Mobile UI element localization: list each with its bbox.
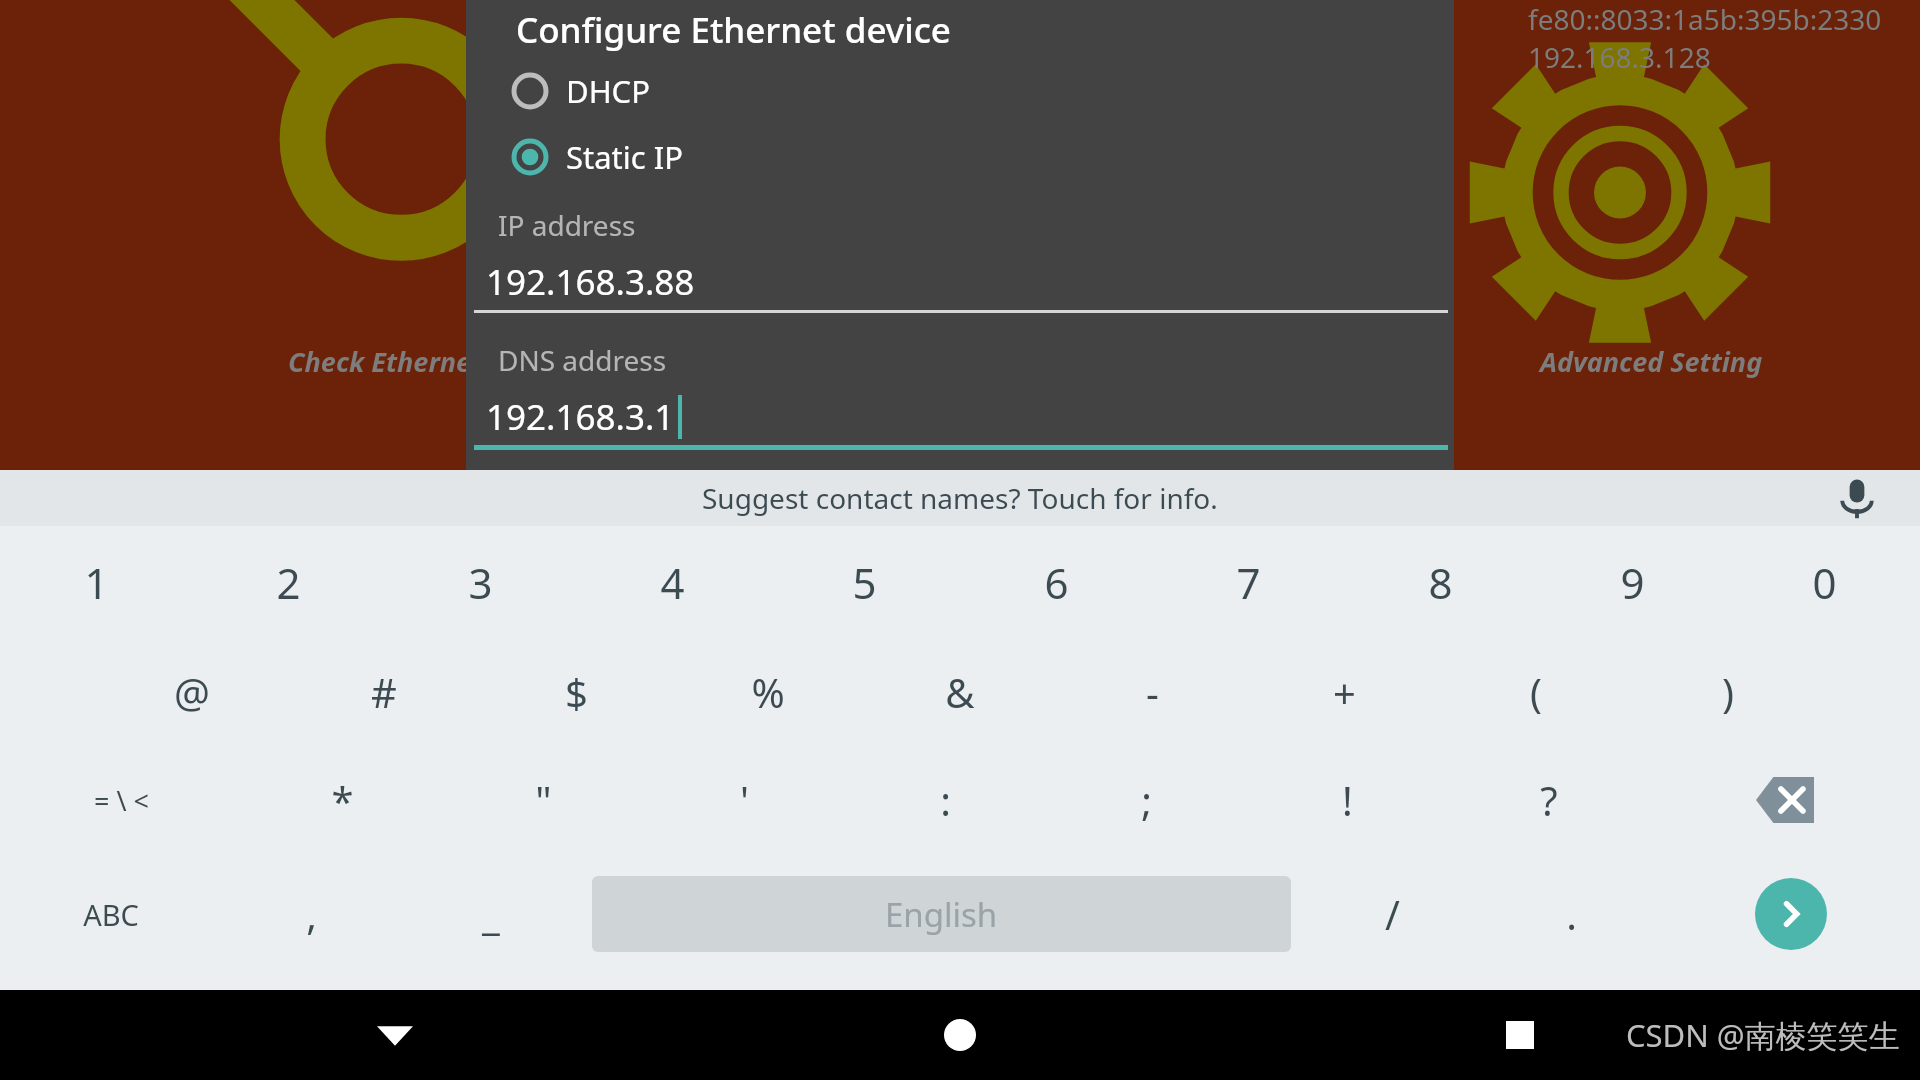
button[interactable]: " — [443, 746, 644, 854]
button[interactable]: 3 — [384, 526, 576, 638]
button[interactable]: Suggest contact names? Touch for info. — [0, 470, 1920, 526]
staticText: # — [371, 665, 397, 719]
staticText: _ — [482, 887, 500, 941]
staticText: 9 — [1620, 554, 1645, 611]
staticText: Advanced Setting — [1540, 343, 1763, 380]
button[interactable]: 8 — [1344, 526, 1536, 638]
button[interactable]: ABC — [0, 854, 222, 974]
staticText: 5 — [852, 554, 877, 611]
staticText: fe80::8033:1a5b:395b:2330 — [1528, 0, 1882, 38]
button[interactable]: Voice input — [1834, 475, 1880, 521]
staticText: 192.168.3.88 — [486, 258, 695, 306]
staticText: DNS address — [498, 341, 667, 379]
staticText: 6 — [1044, 554, 1069, 611]
staticText: 192.168.3.1 — [486, 393, 675, 441]
staticText: 7 — [1236, 554, 1261, 611]
button[interactable]: - — [1056, 638, 1248, 746]
button[interactable]: / — [1303, 854, 1482, 974]
button[interactable]: Backspace — [1649, 746, 1920, 854]
staticText: Check Ethernet — [288, 343, 483, 380]
staticText: DHCP — [566, 70, 650, 112]
button[interactable]: Recent apps — [1460, 990, 1580, 1080]
staticText: = \ < — [94, 782, 149, 819]
staticText: ABC — [83, 895, 139, 934]
button[interactable]: 192.168.3.1 — [466, 389, 1454, 445]
button[interactable]: ) — [1632, 638, 1824, 746]
button[interactable]: + — [1248, 638, 1440, 746]
staticText: * — [331, 773, 354, 827]
button[interactable]: English — [592, 876, 1291, 952]
staticText: 2 — [276, 554, 301, 611]
staticText: 1 — [84, 554, 109, 611]
staticText: ; — [1141, 773, 1152, 827]
staticText: 192.168.3.128 — [1528, 38, 1711, 76]
button[interactable]: ; — [1046, 746, 1247, 854]
button[interactable]: = \ < — [0, 746, 242, 854]
staticText: ? — [1540, 773, 1558, 827]
button[interactable]: 1 — [0, 526, 192, 638]
button[interactable]: 5 — [768, 526, 960, 638]
button[interactable]: Home — [900, 990, 1020, 1080]
button[interactable]: , — [222, 854, 401, 974]
button[interactable]: ? — [1448, 746, 1649, 854]
staticText: $ — [565, 665, 588, 719]
staticText: Configure Ethernet device — [516, 6, 951, 54]
staticText: - — [1146, 665, 1159, 719]
button[interactable]: . — [1482, 854, 1661, 974]
button[interactable]: & — [864, 638, 1056, 746]
button[interactable]: 192.168.3.88 — [466, 254, 1454, 310]
staticText: 3 — [468, 554, 493, 611]
button[interactable]: 6 — [960, 526, 1152, 638]
button[interactable]: DHCP — [466, 66, 1454, 116]
button[interactable]: _ — [401, 854, 580, 974]
button[interactable]: 4 — [576, 526, 768, 638]
button[interactable]: : — [845, 746, 1046, 854]
button[interactable]: * — [242, 746, 443, 854]
staticText: Suggest contact names? Touch for info. — [702, 479, 1218, 517]
staticText: & — [945, 665, 975, 719]
staticText: English — [885, 892, 998, 937]
staticText: " — [535, 773, 552, 827]
staticText: 8 — [1428, 554, 1453, 611]
staticText: ( — [1530, 665, 1542, 719]
staticText: . — [1566, 887, 1577, 941]
button[interactable]: ! — [1247, 746, 1448, 854]
button[interactable]: ( — [1440, 638, 1632, 746]
button[interactable]: 0 — [1728, 526, 1920, 638]
staticText: % — [751, 665, 785, 719]
button[interactable]: Enter — [1661, 854, 1920, 974]
staticText: ! — [1342, 773, 1353, 827]
staticText: ) — [1722, 665, 1734, 719]
staticText: Static IP — [566, 136, 683, 178]
button[interactable]: Back — [335, 990, 455, 1080]
button[interactable]: 7 — [1152, 526, 1344, 638]
button[interactable]: ' — [644, 746, 845, 854]
staticText: : — [940, 773, 951, 827]
button[interactable]: # — [288, 638, 480, 746]
staticText: , — [306, 887, 317, 941]
staticText: @ — [174, 665, 210, 719]
staticText: 4 — [660, 554, 685, 611]
button[interactable]: @ — [96, 638, 288, 746]
staticText: CSDN @南棱笑笑生 — [1626, 1014, 1900, 1056]
button[interactable]: 2 — [192, 526, 384, 638]
button[interactable]: Check Ethernet — [120, 10, 500, 350]
button[interactable]: Static IP — [466, 132, 1454, 182]
staticText: ' — [740, 773, 749, 827]
staticText: 0 — [1812, 554, 1837, 611]
staticText: + — [1333, 665, 1356, 719]
button[interactable]: 9 — [1536, 526, 1728, 638]
staticText: IP address — [498, 206, 636, 244]
button[interactable]: $ — [480, 638, 672, 746]
button[interactable]: % — [672, 638, 864, 746]
button[interactable]: Advanced Setting — [1455, 45, 1785, 340]
staticText: / — [1385, 887, 1400, 941]
